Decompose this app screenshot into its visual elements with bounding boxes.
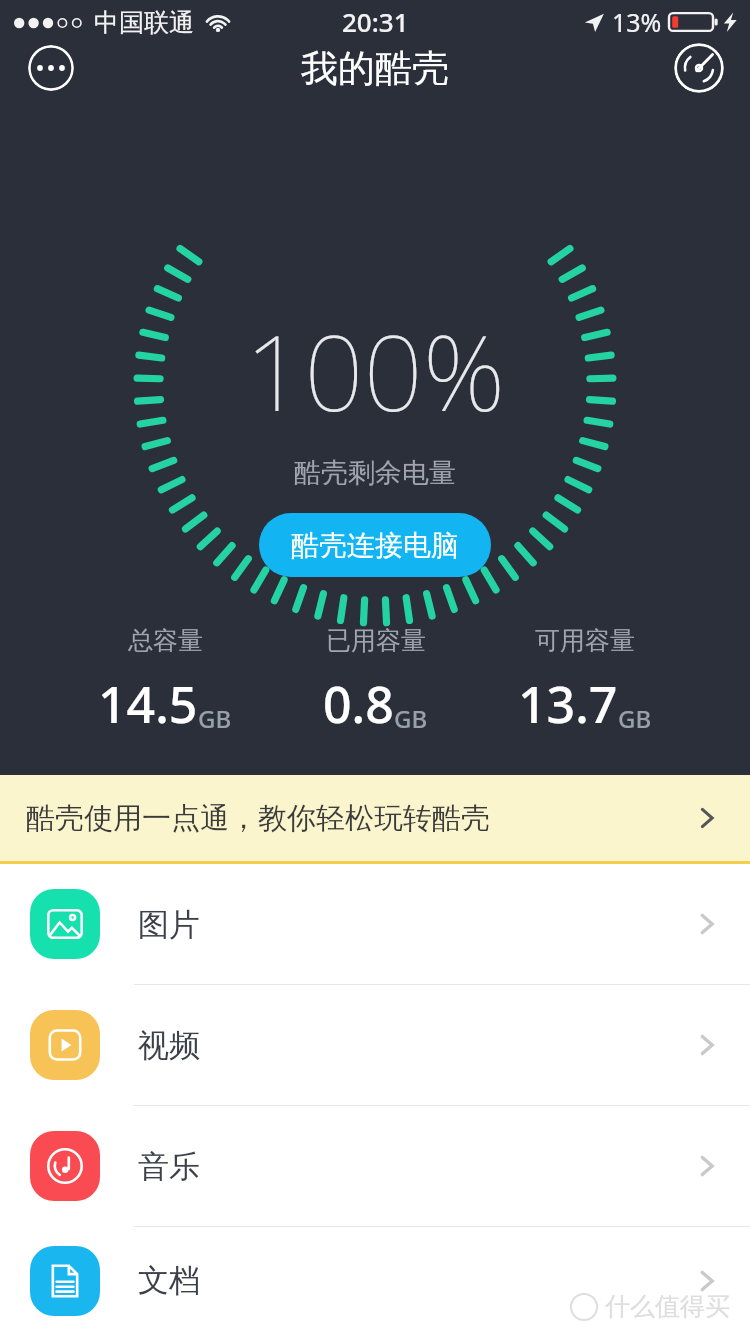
other: Videos xyxy=(30,1010,100,1080)
staticText: 酷壳剩余电量 xyxy=(294,456,456,490)
button[interactable]: Pictures xyxy=(0,864,750,984)
button[interactable]: Documents xyxy=(0,1227,750,1334)
button[interactable]: More options xyxy=(28,45,74,91)
button[interactable]: Speed test xyxy=(674,43,724,93)
staticText: 总容量 xyxy=(128,625,203,656)
other: Pictures xyxy=(30,889,100,959)
button[interactable]: 酷壳使用一点通，教你轻松玩转酷壳 xyxy=(0,775,750,861)
staticText: 酷壳连接电脑 xyxy=(291,528,459,563)
staticText: 13% xyxy=(612,5,662,39)
staticText: 音乐 xyxy=(138,1147,200,1186)
staticText: 20:31 xyxy=(342,4,409,39)
button[interactable]: Music xyxy=(0,1106,750,1226)
staticText: GB xyxy=(394,702,428,735)
staticText: 酷壳使用一点通，教你轻松玩转酷壳 xyxy=(26,800,490,837)
staticText: 我的酷壳 xyxy=(301,45,449,92)
staticText: 图片 xyxy=(138,905,200,944)
staticText: 14.5 xyxy=(98,670,198,738)
button[interactable]: Videos xyxy=(0,985,750,1105)
staticText: 0.8 xyxy=(323,670,394,738)
staticText: 100% xyxy=(245,300,506,442)
other: Music xyxy=(30,1131,100,1201)
staticText: GB xyxy=(198,702,232,735)
button[interactable]: 酷壳连接电脑 xyxy=(259,513,491,577)
staticText: 中国联通 xyxy=(94,7,194,38)
staticText: 可用容量 xyxy=(535,625,635,656)
staticText: 视频 xyxy=(138,1026,200,1065)
staticText: 文档 xyxy=(138,1261,200,1300)
staticText: 什么值得买 xyxy=(605,1291,730,1322)
staticText: GB xyxy=(618,702,652,735)
staticText: 13.7 xyxy=(518,670,618,738)
other: Documents xyxy=(30,1246,100,1316)
staticText: 已用容量 xyxy=(326,625,426,656)
